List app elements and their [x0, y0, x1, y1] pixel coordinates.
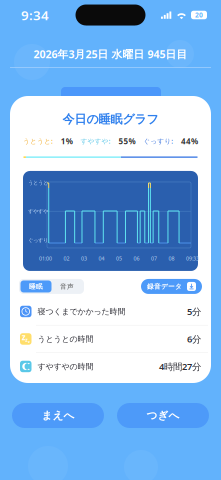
staticText: 6分: [187, 333, 201, 345]
button[interactable]: まえへ: [12, 403, 104, 428]
button[interactable]: z: [13, 325, 208, 352]
staticText: すやすやの時間: [37, 362, 93, 371]
button[interactable]: つぎへ: [117, 403, 209, 428]
button[interactable]: 録音データ: [141, 279, 202, 294]
staticText: うとうと:: [23, 137, 53, 145]
staticText: z: [28, 339, 30, 344]
staticText: 07: [151, 255, 157, 262]
staticText: 録音データ: [147, 282, 182, 291]
staticText: 20: [195, 11, 203, 19]
staticText: z: [22, 332, 26, 342]
staticText: 4時間27分: [159, 360, 201, 373]
staticText: 04: [98, 255, 104, 262]
staticText: うとうとの時間: [37, 334, 93, 344]
staticText: 05: [116, 255, 122, 262]
staticText: すやすや:: [81, 137, 111, 145]
staticText: 06: [133, 255, 139, 262]
staticText: 寝つくまでかかった時間: [37, 307, 125, 316]
staticText: ぐっすり:: [143, 137, 173, 145]
staticText: 1%: [61, 136, 73, 146]
button[interactable]: 睡眠: [20, 280, 51, 292]
staticText: 55%: [118, 136, 135, 146]
staticText: 09:33: [186, 255, 199, 262]
staticText: ぐっすり: [28, 237, 48, 244]
staticText: 今日の睡眠グラフ: [62, 112, 158, 127]
button[interactable]: すやすやの時間: [13, 353, 208, 380]
staticText: 5分: [187, 305, 201, 318]
staticText: 08: [168, 255, 174, 262]
staticText: 02: [63, 255, 69, 262]
button[interactable]: 寝つくまでかかった時間: [13, 298, 208, 325]
staticText: まえへ: [41, 409, 74, 422]
staticText: 9:34: [21, 6, 49, 24]
staticText: つぎへ: [146, 409, 179, 422]
staticText: うとうと: [28, 179, 48, 186]
staticText: 音声: [60, 282, 74, 291]
staticText: 01:00: [39, 255, 52, 262]
staticText: 2026年3月25日 水曜日 945日目: [33, 47, 187, 61]
staticText: z: [25, 336, 28, 343]
staticText: 睡眠: [29, 282, 43, 291]
staticText: 03: [81, 255, 87, 262]
staticText: すやすや: [28, 208, 48, 215]
staticText: 44%: [181, 136, 198, 146]
button[interactable]: 音声: [51, 280, 82, 292]
